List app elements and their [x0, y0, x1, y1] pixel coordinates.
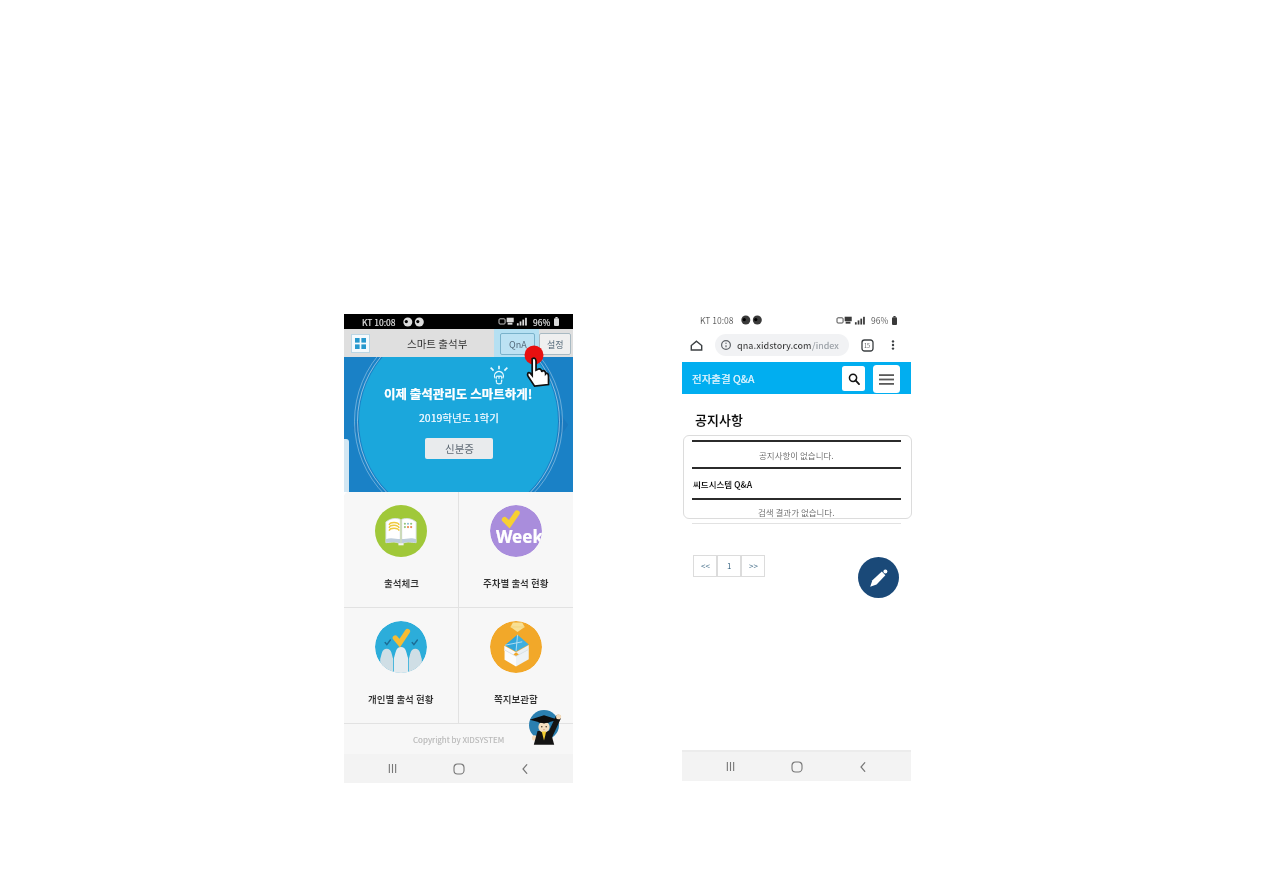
staticText: 설정	[547, 338, 564, 351]
staticText: 1	[727, 560, 732, 572]
staticText: KT 10:08	[700, 314, 734, 326]
button[interactable]: 출석체크	[344, 492, 458, 607]
staticText: Copyright by XIDSYSTEM	[413, 734, 505, 746]
button[interactable]: Recents	[374, 754, 410, 783]
staticText: 쪽지보관함	[494, 692, 538, 706]
button[interactable]: Home	[441, 754, 477, 783]
staticText: Week	[496, 525, 542, 548]
button[interactable]: Home	[779, 752, 815, 781]
staticText: >>	[749, 560, 758, 572]
button[interactable]: Tabs	[862, 340, 873, 351]
button[interactable]: 신분증	[425, 438, 493, 459]
button[interactable]: Menu	[873, 365, 900, 393]
staticText: 신분증	[445, 441, 474, 456]
staticText: 96%	[533, 316, 551, 328]
staticText: 2019학년도 1학기	[419, 410, 499, 425]
button[interactable]: Back	[845, 752, 881, 781]
button[interactable]: 쪽지보관함	[459, 608, 573, 723]
button[interactable]: qna.xidstory.com	[715, 334, 849, 356]
button[interactable]: <<	[693, 555, 717, 577]
staticText: 15	[864, 342, 871, 350]
staticText: 공지사항이 없습니다.	[759, 449, 834, 461]
staticText: 씨드시스템 Q&A	[693, 478, 753, 490]
button[interactable]: More options	[887, 339, 899, 351]
staticText: 주차별 출석 현황	[483, 576, 549, 590]
staticText: qna.xidstory.com	[737, 339, 812, 352]
button[interactable]: 1	[717, 555, 741, 577]
staticText: QnA	[509, 338, 527, 351]
button[interactable]: Write new post	[858, 557, 899, 598]
staticText: 공지사항	[695, 410, 743, 429]
staticText: 전자출결 Q&A	[692, 371, 755, 386]
staticText: 개인별 출석 현황	[368, 692, 434, 706]
button[interactable]: QnA	[500, 333, 535, 355]
staticText: /index	[812, 339, 839, 352]
staticText: <<	[701, 560, 710, 572]
button[interactable]: 개인별 출석 현황	[344, 608, 458, 723]
staticText: 검색 결과가 없습니다.	[758, 506, 835, 518]
staticText: 스마트 출석부	[407, 336, 468, 351]
staticText: 이제 출석관리도 스마트하게!	[384, 384, 533, 402]
button[interactable]: Home	[690, 339, 703, 352]
button[interactable]: Back	[507, 754, 543, 783]
staticText: 출석체크	[384, 576, 419, 590]
button[interactable]: >>	[741, 555, 765, 577]
button[interactable]: 설정	[539, 333, 571, 355]
button[interactable]: Search	[842, 366, 865, 391]
staticText: KT 10:08	[362, 316, 396, 328]
button[interactable]: Apps menu	[351, 334, 370, 353]
button[interactable]: Week	[459, 492, 573, 607]
button[interactable]: Recents	[712, 752, 748, 781]
staticText: 96%	[871, 314, 889, 326]
